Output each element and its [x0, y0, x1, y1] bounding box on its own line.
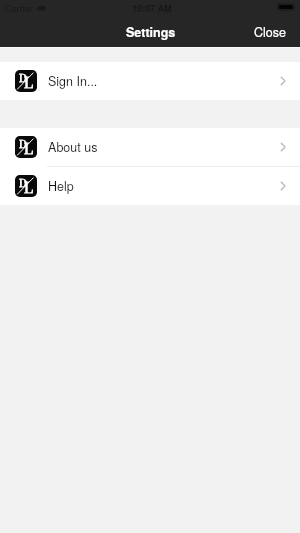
staticText: D	[19, 70, 27, 87]
staticText: Settings	[126, 23, 176, 41]
staticText: Carrier	[5, 2, 33, 15]
staticText: D	[19, 136, 27, 153]
button[interactable]: D	[0, 167, 300, 205]
button[interactable]: D	[0, 128, 300, 166]
staticText: Close	[254, 23, 286, 41]
staticText: L	[24, 71, 34, 92]
staticText: 10:07 AM	[132, 2, 172, 15]
staticText: D	[19, 175, 27, 192]
staticText: L	[24, 137, 34, 158]
staticText: L	[24, 176, 34, 197]
staticText: About us	[48, 138, 98, 156]
button[interactable]: Close	[240, 16, 300, 47]
button[interactable]: D	[0, 62, 300, 100]
staticText: Sign In...	[48, 72, 98, 90]
staticText: Help	[48, 177, 74, 195]
